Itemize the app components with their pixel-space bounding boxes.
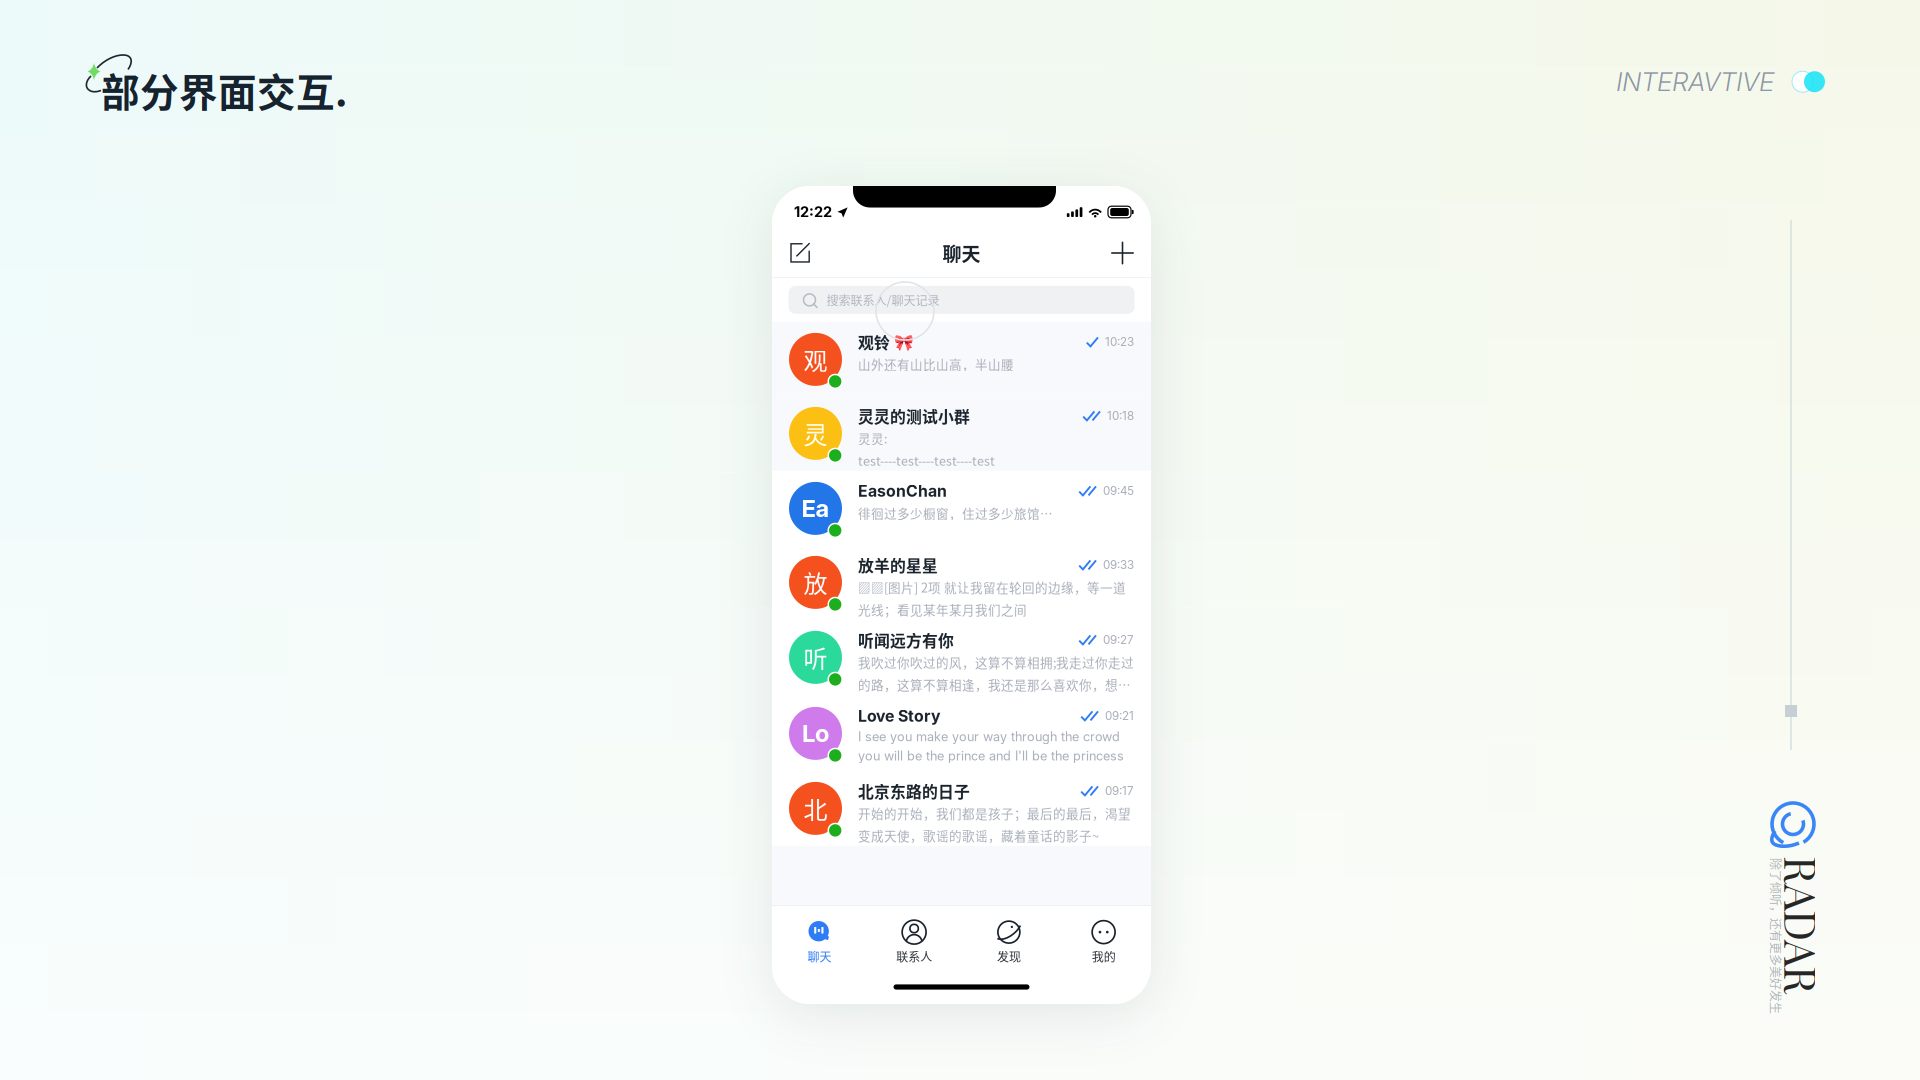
staticText: 09:17 [1105, 784, 1134, 798]
staticText: 灵灵的测试小群 [858, 404, 970, 427]
staticText: 10:18 [1107, 409, 1134, 423]
button[interactable]: Compose [780, 233, 820, 273]
staticText: 听闻远方有你 [858, 628, 954, 651]
staticText: 聊天 [807, 948, 831, 965]
staticText: INTERAVTIVE [1616, 66, 1774, 97]
staticText: 放羊的星星 [858, 553, 938, 576]
staticText: 09:27 [1103, 633, 1134, 647]
button[interactable]: 北 [772, 771, 1151, 846]
staticText: RADAR [1702, 927, 1840, 985]
staticText: EasonChan [858, 481, 947, 500]
staticText: 发现 [997, 948, 1021, 965]
staticText: 的路，这算不算相逢，我还是那么喜欢你，想… [858, 675, 1131, 693]
button[interactable]: Ea [772, 471, 1151, 545]
staticText: 开始的开始，我们都是孩子；最后的最后，渴望 [858, 804, 1131, 822]
staticText: 徘徊过多少橱窗，住过多少旅馆… [858, 504, 1053, 522]
staticText: ▨▨[图片] 2项 就让我留在轮回的边缘，等一道 [858, 578, 1126, 596]
button[interactable]: 放 [772, 545, 1151, 620]
button[interactable]: 搜索联系人/聊天记录 [788, 286, 1134, 314]
staticText: 联系人 [896, 948, 932, 965]
staticText: 09:21 [1105, 709, 1134, 723]
staticText: 观 [803, 342, 827, 377]
staticText: 灵 [803, 416, 827, 451]
staticText: 变成天使，歌谣的歌谣，藏着童话的影子~ [858, 826, 1099, 844]
staticText: 我的 [1092, 948, 1116, 965]
staticText: 部分界面交互. [101, 62, 348, 118]
staticText: I see you make your way through the crow… [858, 729, 1120, 744]
button[interactable]: 听 [772, 620, 1151, 696]
staticText: 10:23 [1105, 335, 1134, 349]
staticText: 09:45 [1103, 484, 1134, 498]
staticText: 听 [803, 640, 827, 675]
staticText: 光线；看见某年某月我们之间 [858, 600, 1027, 618]
staticText: 北京东路的日子 [858, 779, 970, 802]
staticText: 搜索联系人/聊天记录 [826, 291, 939, 309]
staticText: 灵灵: [858, 429, 887, 447]
button[interactable]: Add [1102, 232, 1143, 273]
staticText: 北 [803, 791, 827, 826]
staticText: Ea [801, 494, 829, 523]
staticText: Love Story [858, 706, 941, 725]
button[interactable]: 发现 [961, 906, 1056, 970]
staticText: Lo [802, 719, 829, 748]
staticText: 12:22 [794, 203, 832, 221]
button[interactable]: 灵 [772, 396, 1151, 471]
staticText: 09:33 [1103, 558, 1134, 572]
button[interactable]: 观 [772, 322, 1151, 396]
staticText: 放 [803, 565, 827, 600]
staticText: 山外还有山比山高，半山腰 [858, 355, 1014, 373]
staticText: 聊天 [942, 239, 980, 267]
button[interactable]: Lo [772, 696, 1151, 771]
staticText: 我吹过你吹过的风，这算不算相拥;我走过你走过 [858, 653, 1134, 671]
staticText: you will be the prince and I'll be the p… [858, 748, 1124, 763]
staticText: test----test----test----test [858, 451, 995, 469]
button[interactable]: 我的 [1056, 906, 1151, 970]
staticText: 除了倾听，还有更多美好发生 [1676, 949, 1832, 967]
button[interactable]: 联系人 [867, 906, 962, 970]
button[interactable]: 聊天 [772, 906, 867, 970]
staticText: 观铃 🎀 [858, 330, 914, 353]
